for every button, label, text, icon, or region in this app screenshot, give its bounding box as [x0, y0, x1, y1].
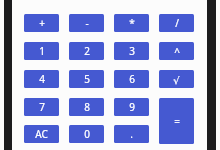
staticText: -	[85, 16, 89, 30]
staticText: 5	[84, 72, 90, 86]
button[interactable]: /	[159, 14, 194, 32]
staticText: /	[175, 16, 179, 30]
staticText: AC	[35, 127, 48, 141]
button[interactable]: 5	[69, 70, 104, 88]
button[interactable]: 4	[24, 70, 59, 88]
button[interactable]: =	[159, 98, 194, 144]
button[interactable]: -	[69, 14, 104, 32]
staticText: +	[39, 16, 45, 30]
button[interactable]: 8	[69, 98, 104, 116]
button[interactable]: +	[24, 14, 59, 32]
button[interactable]: 0	[69, 125, 104, 143]
button[interactable]: 3	[114, 42, 149, 60]
staticText: 7	[39, 100, 45, 114]
staticText: ^	[174, 45, 180, 59]
button[interactable]: 7	[24, 98, 59, 116]
button[interactable]: *	[114, 14, 149, 32]
button[interactable]: 2	[69, 42, 104, 60]
button[interactable]: AC	[24, 125, 59, 143]
button[interactable]: .	[114, 125, 149, 143]
button[interactable]: ^	[159, 42, 194, 60]
button[interactable]: √	[159, 70, 194, 88]
staticText: 1	[39, 44, 45, 58]
staticText: *	[129, 16, 135, 30]
button[interactable]: 1	[24, 42, 59, 60]
staticText: 0	[84, 127, 90, 141]
staticText: =	[174, 114, 180, 128]
staticText: √	[173, 75, 180, 87]
button[interactable]: 9	[114, 98, 149, 116]
staticText: 8	[84, 100, 90, 114]
staticText: 9	[129, 100, 135, 114]
button[interactable]: 6	[114, 70, 149, 88]
staticText: 2	[84, 44, 90, 58]
staticText: .	[130, 127, 133, 141]
staticText: 4	[39, 72, 45, 86]
staticText: 6	[129, 72, 135, 86]
staticText: 3	[129, 44, 135, 58]
